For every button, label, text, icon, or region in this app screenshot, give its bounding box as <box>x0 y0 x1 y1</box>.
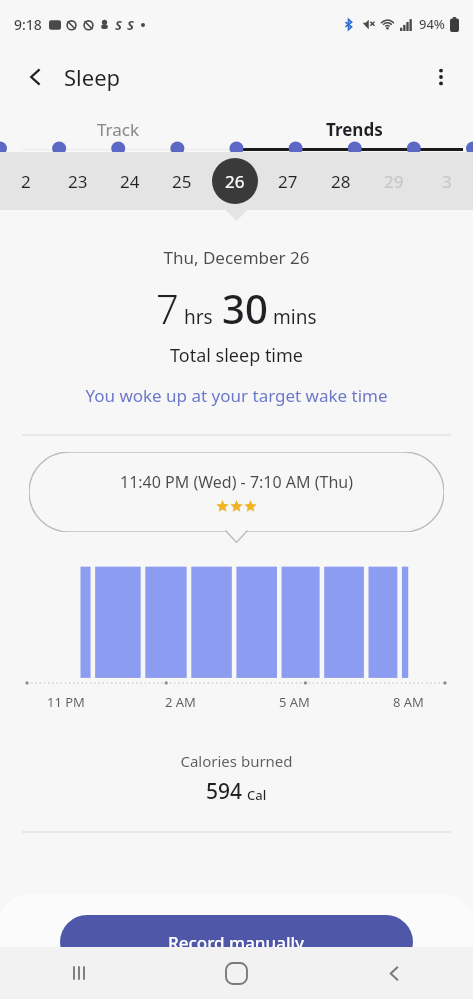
staticText: Total sleep time <box>0 343 473 368</box>
staticText: 29 <box>384 170 404 193</box>
button[interactable]: 11:40 PM (Wed) - 7:10 AM (Thu) <box>29 452 444 532</box>
staticText: 3 <box>442 170 452 193</box>
staticText: 5 AM <box>279 693 310 711</box>
staticText: 11:40 PM (Wed) - 7:10 AM (Thu) <box>120 471 353 493</box>
staticText: hrs <box>184 304 213 330</box>
staticText: Calories burned <box>0 751 473 771</box>
button[interactable]: 29 <box>367 152 420 210</box>
staticText: 9:18 <box>14 15 42 34</box>
button[interactable]: 24 <box>104 152 156 210</box>
button[interactable]: Back <box>315 947 473 999</box>
button[interactable]: More options <box>419 55 463 99</box>
button[interactable]: 23 <box>52 152 104 210</box>
staticText: S <box>127 16 134 34</box>
staticText: Sleep <box>64 62 121 92</box>
staticText: 94% <box>419 15 445 33</box>
button[interactable]: Trends <box>236 106 473 152</box>
staticText: Trends <box>326 118 383 141</box>
staticText: 25 <box>172 170 192 193</box>
staticText: Thu, December 26 <box>0 246 473 269</box>
button[interactable]: Track <box>0 106 236 152</box>
staticText: 7 <box>156 281 179 335</box>
button[interactable]: Home <box>157 947 315 999</box>
button[interactable]: Back <box>14 55 58 99</box>
button[interactable]: 27 <box>261 152 314 210</box>
staticText: 26 <box>225 170 245 193</box>
staticText: 23 <box>68 170 88 193</box>
staticText: 11 PM <box>47 693 85 711</box>
button[interactable]: 2 <box>0 152 52 210</box>
staticText: Track <box>97 118 140 141</box>
staticText: Record manually <box>168 931 305 954</box>
button[interactable]: 25 <box>156 152 208 210</box>
button[interactable]: Recent apps <box>0 947 157 999</box>
staticText: 2 AM <box>165 693 196 711</box>
staticText: You woke up at your target wake time <box>0 384 473 407</box>
staticText: 594 <box>206 777 243 806</box>
staticText: 28 <box>331 170 351 193</box>
staticText: 2 <box>21 170 31 193</box>
staticText: mins <box>273 304 317 330</box>
staticText: 30 <box>222 281 268 335</box>
button[interactable]: 26 <box>208 152 261 210</box>
staticText: 24 <box>120 170 140 193</box>
button[interactable]: Record manually <box>60 915 413 969</box>
staticText: Cal <box>247 786 267 804</box>
button[interactable]: 28 <box>314 152 367 210</box>
staticText: 8 AM <box>393 693 424 711</box>
staticText: S <box>115 16 122 34</box>
staticText: 27 <box>278 170 298 193</box>
